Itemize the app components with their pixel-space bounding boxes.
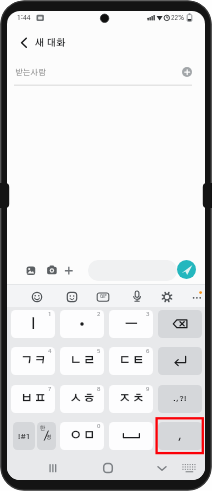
button[interactable] bbox=[24, 264, 38, 278]
button[interactable] bbox=[158, 310, 202, 338]
button[interactable]: ㄴㄹ bbox=[60, 347, 104, 375]
staticText: 1 bbox=[48, 311, 52, 317]
button[interactable]: ㄷㅌ bbox=[109, 347, 153, 375]
button[interactable] bbox=[160, 290, 174, 304]
staticText: , bbox=[178, 431, 182, 441]
button[interactable] bbox=[130, 289, 144, 303]
button[interactable] bbox=[158, 347, 202, 375]
staticText: 받는사람 bbox=[15, 69, 46, 77]
button[interactable]: 한 bbox=[37, 422, 56, 450]
staticText: GIF bbox=[100, 295, 107, 299]
staticText: !#1 bbox=[18, 433, 31, 440]
button[interactable]: ㅇㅁ bbox=[60, 422, 104, 450]
staticText: .,?! bbox=[173, 395, 187, 403]
button[interactable]: ㅣ bbox=[11, 310, 55, 338]
button[interactable] bbox=[182, 67, 192, 77]
staticText: ㅈㅊ bbox=[118, 393, 145, 405]
staticText: 2 bbox=[97, 311, 101, 317]
staticText: 7 bbox=[48, 386, 52, 392]
button[interactable]: ㅈㅊ bbox=[109, 385, 153, 413]
button[interactable] bbox=[177, 260, 196, 279]
button[interactable] bbox=[45, 264, 59, 278]
staticText: 영 bbox=[46, 435, 52, 441]
button[interactable] bbox=[16, 35, 32, 51]
staticText: 0 bbox=[97, 423, 101, 429]
button[interactable] bbox=[153, 459, 171, 477]
staticText: ㄱㅋ bbox=[20, 355, 47, 367]
button[interactable] bbox=[190, 290, 204, 304]
button[interactable] bbox=[109, 422, 153, 450]
staticText: 새 대화 bbox=[35, 38, 66, 48]
button[interactable]: ㄱㅋ bbox=[11, 347, 55, 375]
button[interactable] bbox=[179, 460, 199, 475]
staticText: 3 bbox=[146, 311, 150, 317]
staticText: 한 bbox=[40, 426, 46, 432]
staticText: 1:44 bbox=[17, 15, 31, 22]
button[interactable]: ㅂㅍ bbox=[11, 385, 55, 413]
button[interactable]: GIF bbox=[96, 290, 110, 304]
staticText: 8 bbox=[97, 386, 101, 392]
button[interactable] bbox=[65, 290, 79, 304]
staticText: 5 bbox=[97, 348, 101, 354]
button[interactable]: , bbox=[158, 422, 202, 450]
staticText: 4 bbox=[48, 348, 52, 354]
button[interactable]: !#1 bbox=[13, 422, 35, 450]
staticText: ㄷㅌ bbox=[118, 355, 145, 367]
button[interactable]: ㅡ bbox=[109, 310, 153, 338]
staticText: ㅅㅎ bbox=[69, 393, 96, 405]
button[interactable] bbox=[45, 459, 63, 477]
button[interactable] bbox=[30, 290, 44, 304]
staticText: ㅂㅍ bbox=[20, 393, 47, 405]
button[interactable]: ㅅㅎ bbox=[60, 385, 104, 413]
staticText: 22% bbox=[171, 15, 185, 21]
button[interactable]: 받는사람 bbox=[15, 66, 79, 79]
button[interactable]: 2 bbox=[60, 310, 104, 338]
staticText: 9 bbox=[146, 386, 150, 392]
staticText: ㅇㅁ bbox=[69, 430, 96, 442]
staticText: ㅡ bbox=[124, 318, 139, 331]
staticText: ㅣ bbox=[26, 318, 41, 331]
button[interactable]: .,?! bbox=[158, 385, 202, 413]
button[interactable] bbox=[99, 459, 117, 477]
staticText: 6 bbox=[146, 348, 150, 354]
button[interactable] bbox=[62, 264, 76, 278]
staticText: ㄴㄹ bbox=[69, 355, 96, 367]
